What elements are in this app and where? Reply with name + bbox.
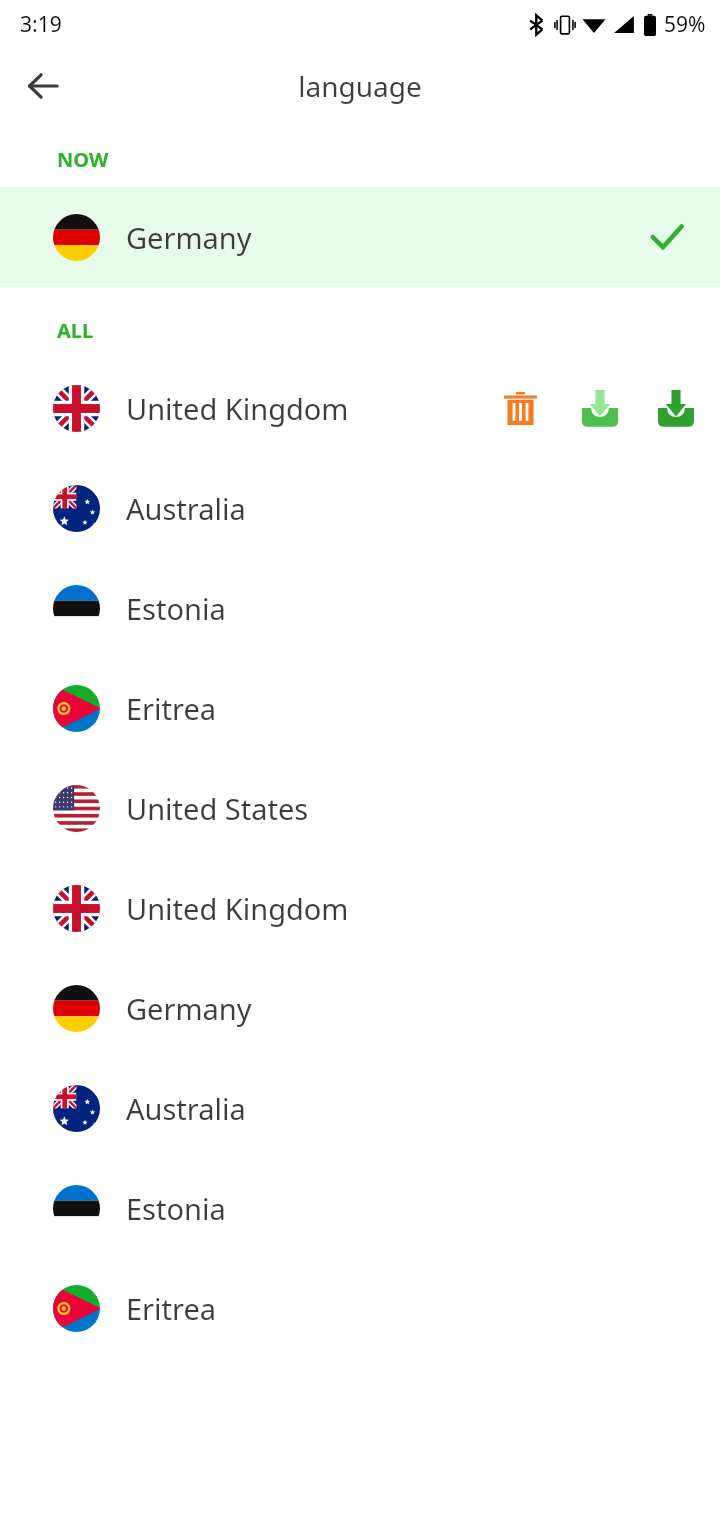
button[interactable]: Selected bbox=[636, 206, 698, 268]
staticText: United Kingdom bbox=[126, 389, 349, 428]
button[interactable]: Germany bbox=[0, 187, 720, 287]
button[interactable]: Eritrea bbox=[0, 1258, 720, 1358]
staticText: Australia bbox=[126, 1089, 246, 1128]
staticText: NOW bbox=[57, 146, 109, 173]
button[interactable]: Germany bbox=[0, 958, 720, 1058]
button[interactable]: United Kingdom bbox=[0, 358, 720, 458]
staticText: 3:19 bbox=[20, 10, 62, 39]
staticText: language bbox=[298, 67, 422, 105]
staticText: Germany bbox=[126, 218, 252, 257]
button[interactable]: Eritrea bbox=[0, 658, 720, 758]
staticText: United States bbox=[126, 789, 309, 828]
button[interactable]: Estonia bbox=[0, 558, 720, 658]
staticText: Estonia bbox=[126, 1189, 226, 1228]
button[interactable]: United States bbox=[0, 758, 720, 858]
staticText: Australia bbox=[126, 489, 246, 528]
staticText: Estonia bbox=[126, 589, 226, 628]
button[interactable]: Downloading bbox=[569, 377, 631, 439]
staticText: Germany bbox=[126, 989, 252, 1028]
button[interactable]: Download bbox=[645, 377, 707, 439]
button[interactable]: Australia bbox=[0, 1058, 720, 1158]
button[interactable]: Delete bbox=[489, 377, 551, 439]
button[interactable]: United Kingdom bbox=[0, 858, 720, 958]
staticText: Eritrea bbox=[126, 689, 217, 728]
button[interactable]: Australia bbox=[0, 458, 720, 558]
staticText: ALL bbox=[57, 317, 94, 344]
staticText: 59% bbox=[664, 10, 706, 39]
staticText: Eritrea bbox=[126, 1289, 217, 1328]
button[interactable]: Back bbox=[12, 55, 74, 117]
button[interactable]: Estonia bbox=[0, 1158, 720, 1258]
staticText: United Kingdom bbox=[126, 889, 349, 928]
